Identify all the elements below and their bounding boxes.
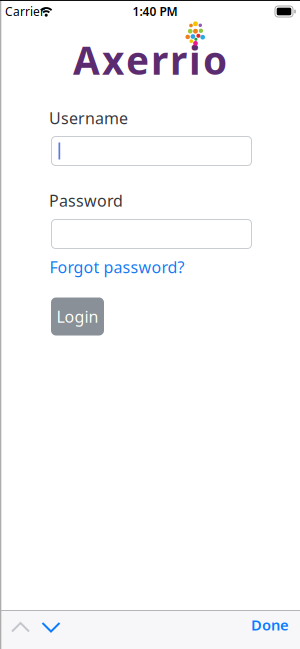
button[interactable]	[39, 616, 63, 636]
button[interactable]	[51, 219, 251, 248]
button[interactable]: Done	[251, 615, 289, 634]
staticText: Carrier	[5, 3, 45, 19]
staticText: Username	[49, 107, 128, 129]
button[interactable]	[8, 616, 32, 636]
button[interactable]	[51, 136, 251, 165]
button[interactable]: Login	[51, 297, 104, 335]
staticText: Forgot password?	[49, 256, 184, 278]
staticText: Done	[251, 615, 289, 634]
staticText: Axerrio	[73, 34, 227, 85]
staticText: 1:40 PM	[132, 3, 177, 19]
staticText: Login	[56, 306, 98, 327]
button[interactable]: Forgot password?	[49, 256, 184, 278]
staticText: Password	[49, 190, 123, 211]
